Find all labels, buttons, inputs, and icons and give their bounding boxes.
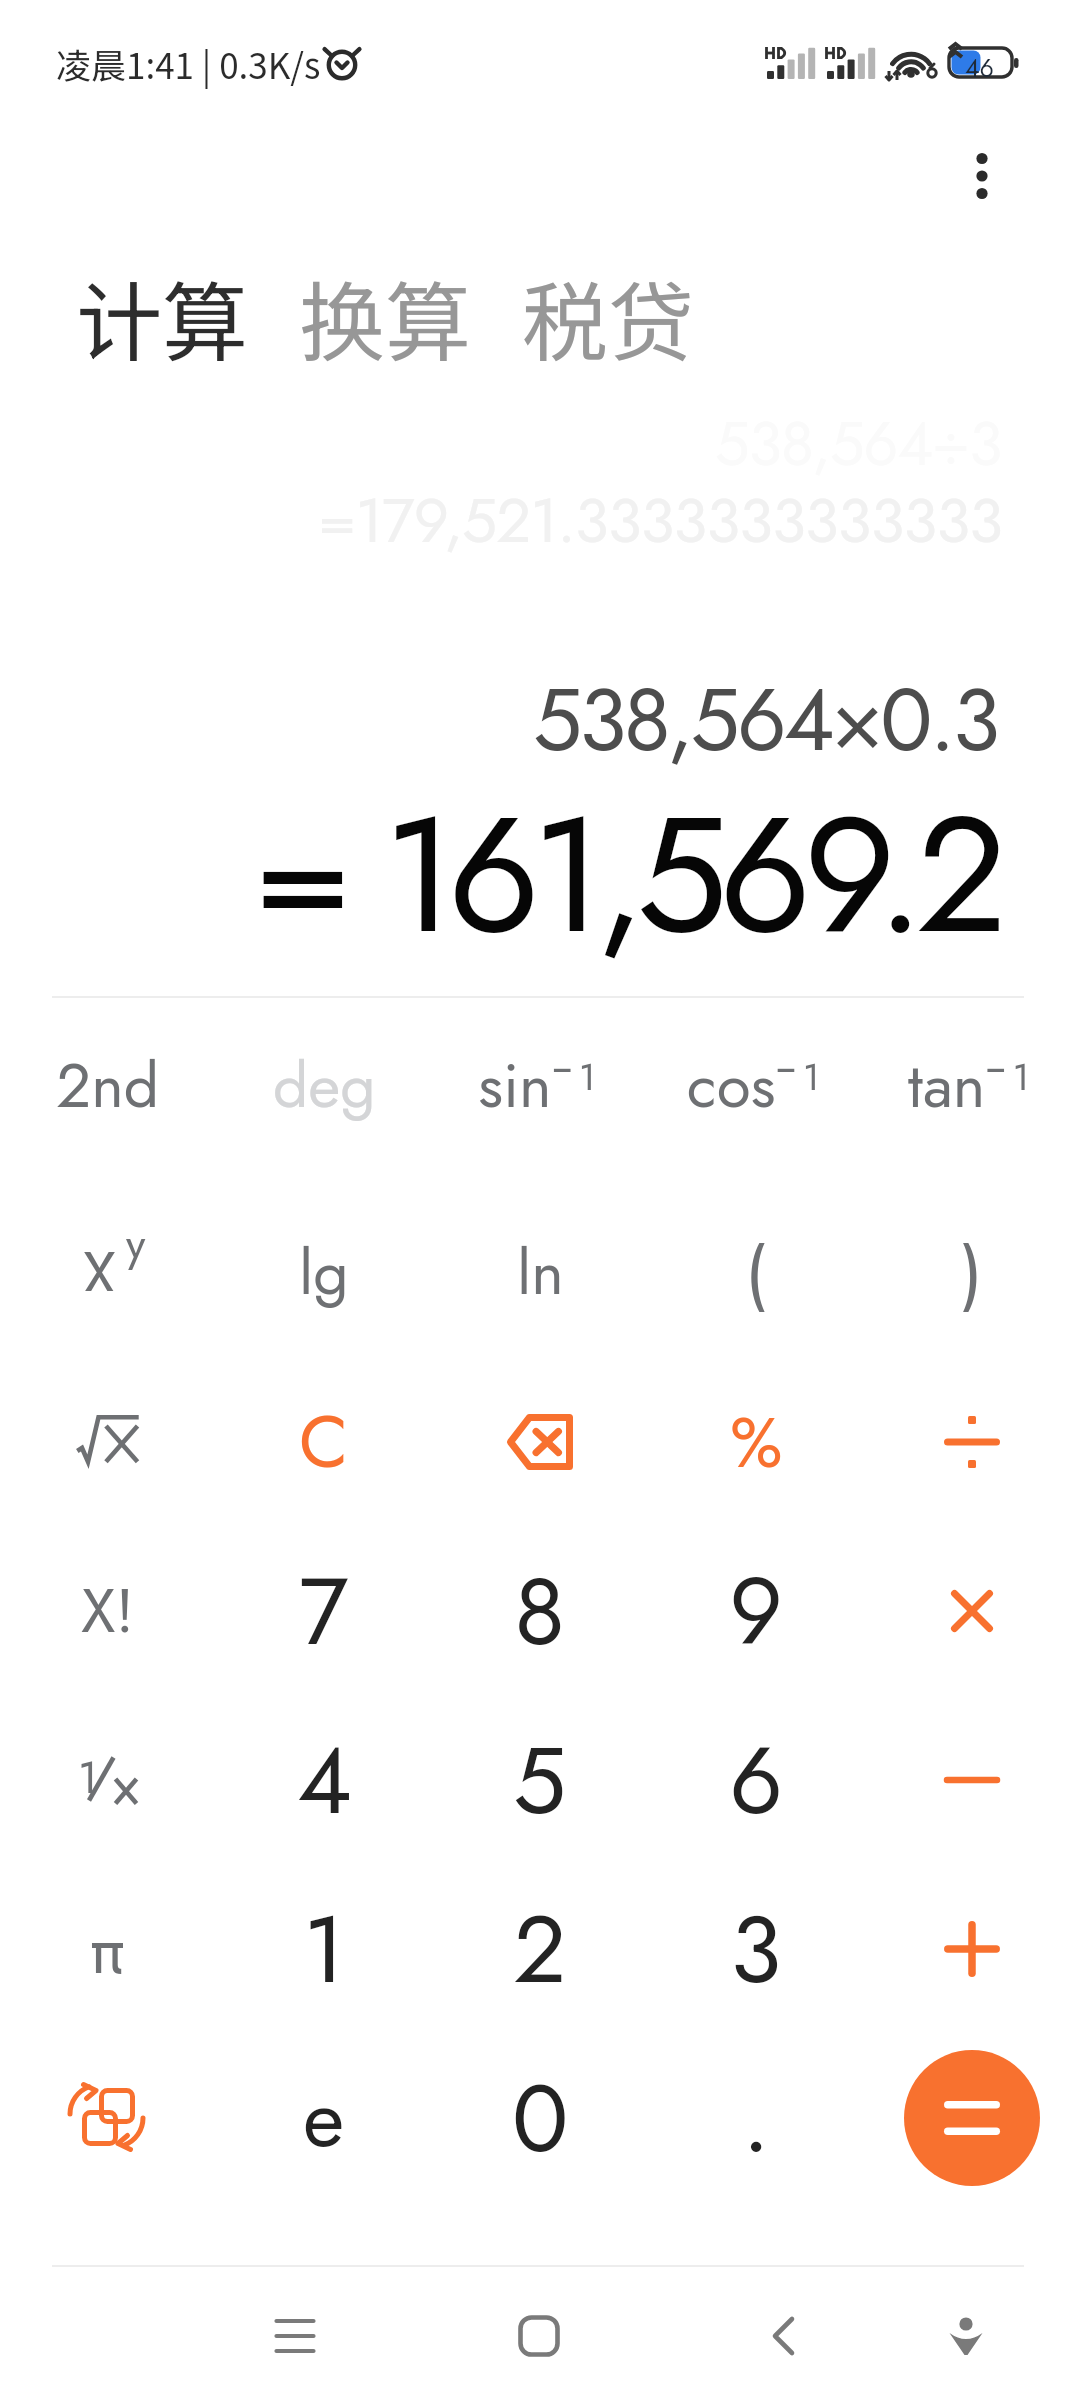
staticText: cos⁻¹ — [687, 1041, 826, 1131]
button[interactable]: tan⁻¹ — [864, 1002, 1080, 1170]
button[interactable]: C — [216, 1358, 432, 1526]
staticText: lg — [299, 1228, 349, 1318]
button[interactable]: 8 — [432, 1527, 648, 1695]
button[interactable]: X — [0, 1189, 216, 1357]
staticText: π — [90, 1902, 126, 1997]
button[interactable]: Equals — [864, 2034, 1080, 2202]
staticText: ln — [517, 1228, 564, 1318]
staticText: X! — [81, 1566, 135, 1656]
button[interactable]: π — [0, 1865, 216, 2033]
button[interactable]: Backspace — [432, 1358, 648, 1526]
button[interactable]: Downloads — [912, 2268, 1020, 2400]
button[interactable]: ) — [864, 1189, 1080, 1357]
button[interactable]: ( — [648, 1189, 864, 1357]
button[interactable]: Unit convert — [0, 2034, 216, 2202]
staticText: ( — [745, 1223, 767, 1324]
staticText: 4 — [297, 1712, 352, 1848]
button[interactable]: 2nd — [0, 1002, 216, 1170]
staticText: C — [299, 1390, 349, 1494]
button[interactable]: 1 — [216, 1865, 432, 2033]
button[interactable]: cos⁻¹ — [648, 1002, 864, 1170]
staticText: 税贷 — [522, 254, 694, 379]
button[interactable]: 9 — [648, 1527, 864, 1695]
button[interactable]: deg — [216, 1002, 432, 1170]
button[interactable]: 6 — [648, 1696, 864, 1864]
button[interactable]: Home — [485, 2268, 593, 2400]
button[interactable]: . — [648, 2034, 864, 2202]
button[interactable]: 税贷 — [522, 254, 694, 379]
button[interactable]: 7 — [216, 1527, 432, 1695]
staticText: =179,521.3333333333333 — [318, 476, 1002, 566]
button[interactable]: Multiply — [864, 1527, 1080, 1695]
staticText: ) — [961, 1223, 983, 1324]
staticText: % — [730, 1392, 783, 1493]
staticText: 2nd — [56, 1041, 160, 1131]
button[interactable]: 换算 — [299, 254, 471, 379]
button[interactable]: % — [648, 1358, 864, 1526]
button[interactable]: X! — [0, 1527, 216, 1695]
staticText: 9 — [729, 1543, 784, 1679]
button[interactable]: 5 — [432, 1696, 648, 1864]
button[interactable]: e — [216, 2034, 432, 2202]
staticText: tan⁻¹ — [908, 1041, 1036, 1131]
staticText: X — [82, 1229, 117, 1291]
staticText: . — [742, 2050, 771, 2186]
button[interactable]: Minus — [864, 1696, 1080, 1864]
staticText: y — [126, 1213, 146, 1275]
staticText: 凌晨1:41 | 0.3K/s — [56, 38, 321, 89]
button[interactable]: 计算 — [76, 254, 248, 379]
staticText: 换算 — [299, 254, 471, 379]
staticText: 2 — [513, 1881, 567, 2017]
staticText: 6 — [729, 1712, 784, 1848]
button[interactable]: More options — [934, 128, 1030, 224]
staticText: 46 — [965, 50, 994, 86]
button[interactable]: 0 — [432, 2034, 648, 2202]
staticText: 0 — [512, 2050, 569, 2186]
staticText: e — [303, 2060, 345, 2176]
staticText: = 161,569.2 — [253, 758, 999, 992]
button[interactable]: ln — [432, 1189, 648, 1357]
staticText: deg — [273, 1041, 376, 1131]
button[interactable]: 1 — [0, 1696, 216, 1864]
button[interactable]: 2 — [432, 1865, 648, 2033]
button[interactable]: Back — [729, 2268, 837, 2400]
staticText: 3 — [730, 1881, 782, 2017]
button[interactable]: Recent apps — [241, 2268, 349, 2400]
staticText: 计算 — [76, 254, 248, 379]
button[interactable]: 4 — [216, 1696, 432, 1864]
staticText: sin⁻¹ — [478, 1041, 602, 1131]
staticText: 1 — [78, 1746, 98, 1797]
staticText: 5 — [513, 1712, 567, 1848]
button[interactable]: Plus — [864, 1865, 1080, 2033]
button[interactable]: sin⁻¹ — [432, 1002, 648, 1170]
button[interactable]: 3 — [648, 1865, 864, 2033]
staticText: 7 — [299, 1543, 349, 1679]
staticText: 1 — [303, 1881, 346, 2017]
button[interactable]: Divide — [864, 1358, 1080, 1526]
button[interactable]: Square root — [0, 1358, 216, 1526]
button[interactable]: lg — [216, 1189, 432, 1357]
staticText: 8 — [514, 1543, 566, 1679]
staticText: 538,564×0.3 — [533, 657, 998, 783]
